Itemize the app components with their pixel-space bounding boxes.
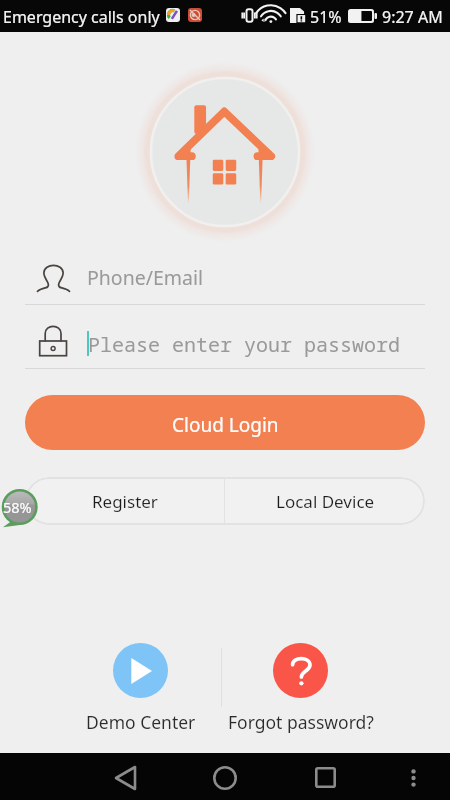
staticText: Forgot password? [228, 710, 374, 734]
button[interactable]: Forgot password? [227, 643, 374, 734]
button[interactable]: Download progress 58 percent [0, 483, 44, 531]
staticText: Phone/Email [87, 264, 204, 291]
staticText: 9:27 AM [382, 6, 443, 28]
staticText: Demo Center [86, 710, 196, 734]
button[interactable]: Back [101, 754, 149, 800]
staticText: 51% [310, 6, 342, 28]
button[interactable]: More options [389, 754, 437, 800]
button[interactable]: Cloud Login [25, 395, 425, 450]
staticText: Local Device [276, 490, 375, 513]
staticText: Register [92, 490, 158, 513]
staticText: Cloud Login [172, 412, 279, 438]
button[interactable]: Recent apps [301, 754, 349, 800]
button[interactable]: Demo Center [80, 643, 201, 734]
button[interactable]: Local Device [225, 477, 425, 525]
button[interactable]: Register [25, 477, 224, 525]
button[interactable]: Home [201, 754, 249, 800]
staticText: Emergency calls only [3, 6, 160, 28]
staticText: Please enter your password [88, 331, 400, 358]
staticText: 58% [3, 497, 32, 517]
